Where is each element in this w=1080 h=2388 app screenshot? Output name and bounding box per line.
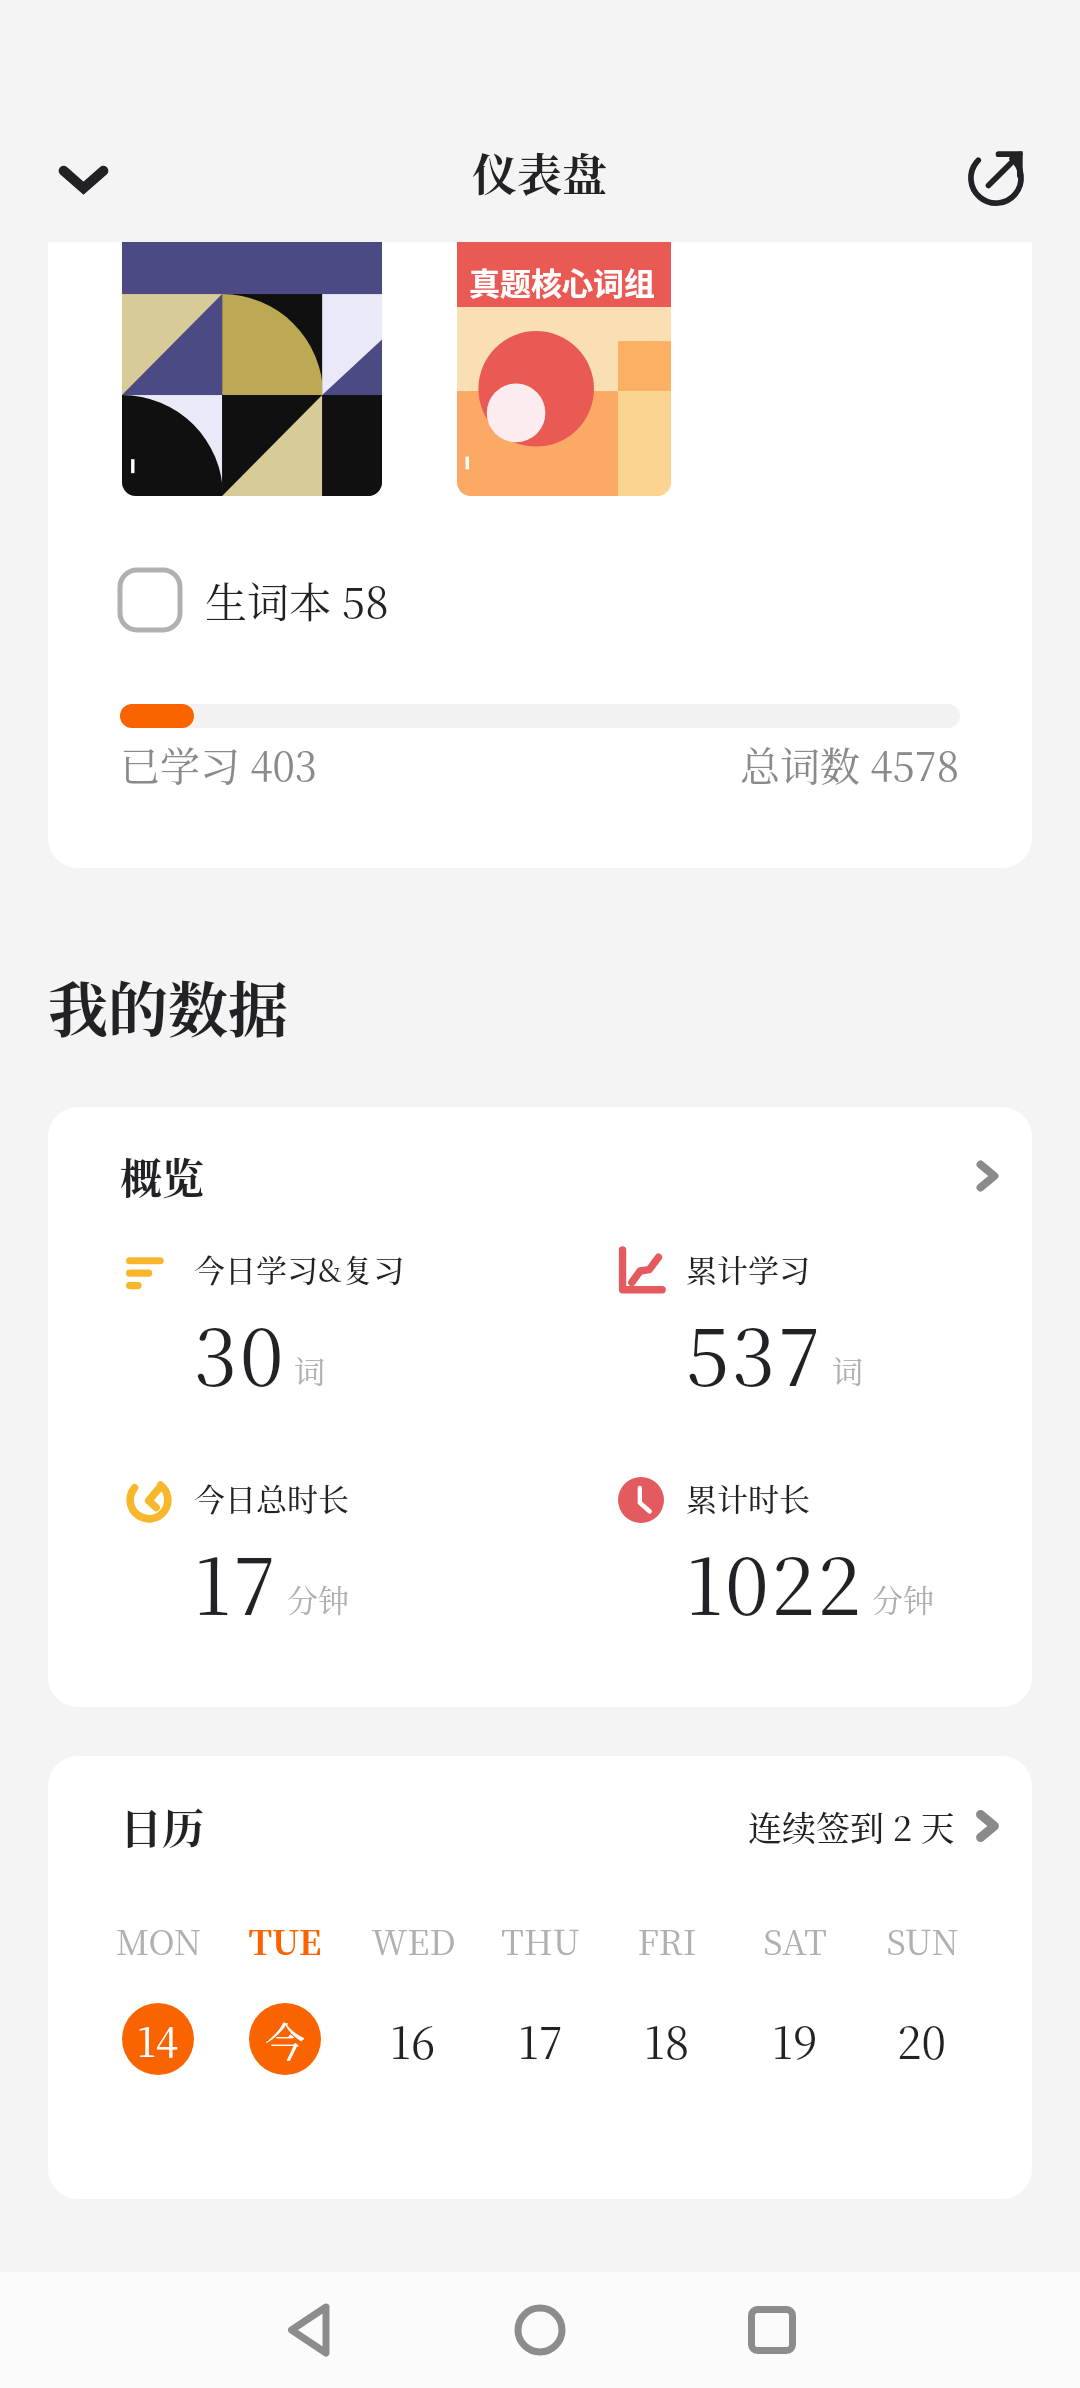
button[interactable]: Recents: [712, 2272, 832, 2388]
staticText: 今日总时长: [194, 1475, 349, 1520]
staticText: 18: [644, 2008, 690, 2071]
button[interactable]: WED: [375, 1916, 451, 2075]
staticText: SAT: [763, 1916, 827, 1956]
staticText: 已学习 403: [120, 735, 317, 792]
staticText: 19: [772, 2008, 818, 2071]
button[interactable]: 连续签到 2 天: [748, 1800, 1013, 1852]
staticText: 30: [194, 1296, 286, 1408]
button[interactable]: Share: [947, 129, 1044, 226]
button[interactable]: SAT: [757, 1916, 833, 2075]
staticText: TUE: [248, 1916, 322, 1956]
staticText: 真题核心词组: [469, 259, 655, 304]
button[interactable]: MON: [120, 1916, 196, 2075]
staticText: 累计学习: [686, 1246, 810, 1291]
staticText: 20: [897, 2008, 947, 2071]
staticText: FRI: [637, 1916, 697, 1956]
staticText: 14: [137, 2011, 179, 2068]
staticText: 日历: [120, 1796, 205, 1856]
staticText: 总词数 4578: [740, 735, 960, 792]
staticText: 词: [832, 1347, 863, 1392]
staticText: 1022: [686, 1525, 864, 1637]
button[interactable]: FRI: [629, 1916, 705, 2075]
button[interactable]: 真题核心词组: [457, 242, 671, 496]
staticText: 17: [194, 1525, 279, 1637]
button[interactable]: TUE: [247, 1916, 323, 2075]
staticText: 16: [390, 2008, 436, 2071]
staticText: 17: [518, 2008, 563, 2071]
button[interactable]: Collapse: [35, 130, 132, 227]
staticText: 概览: [120, 1146, 205, 1206]
staticText: 今: [265, 2011, 305, 2068]
button[interactable]: 日历: [48, 1756, 1032, 2199]
staticText: 累计时长: [686, 1475, 810, 1520]
staticText: 仪表盘: [472, 140, 608, 205]
button[interactable]: More: [961, 1150, 1013, 1202]
staticText: THU: [501, 1916, 580, 1956]
button[interactable]: [122, 242, 382, 496]
staticText: 分钟: [872, 1576, 934, 1621]
button[interactable]: 概览: [48, 1107, 1032, 1707]
button[interactable]: Back: [251, 2272, 371, 2388]
staticText: 生词本 58: [205, 570, 389, 630]
button[interactable]: 真题核心词组: [48, 242, 1032, 868]
staticText: 连续签到 2 天: [748, 1802, 955, 1851]
staticText: MON: [116, 1916, 201, 1956]
button[interactable]: SUN: [884, 1916, 960, 2075]
button[interactable]: Home: [480, 2272, 600, 2388]
staticText: 词: [294, 1347, 325, 1392]
staticText: 537: [686, 1296, 824, 1408]
staticText: 今日学习&复习: [194, 1246, 405, 1291]
button[interactable]: THU: [502, 1916, 578, 2075]
staticText: SUN: [886, 1916, 959, 1956]
other: Check-in detail: [961, 1800, 1013, 1852]
button[interactable]: 生词本 58: [120, 570, 389, 630]
staticText: 分钟: [287, 1576, 349, 1621]
staticText: WED: [371, 1916, 456, 1956]
staticText: 我的数据: [48, 963, 288, 1049]
